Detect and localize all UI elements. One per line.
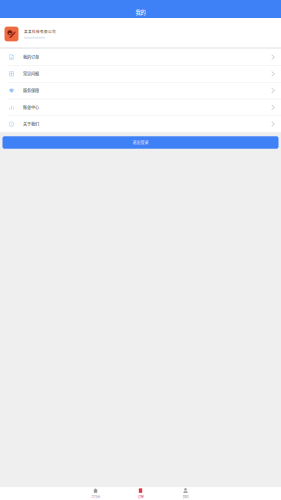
staticText: 服务保障 [23,88,39,94]
staticText: 我的 [182,494,188,499]
button[interactable]: 账单中心 [0,99,281,116]
button[interactable]: 工作台 [73,487,118,500]
button[interactable]: 退出登录 [0,136,281,149]
button[interactable]: 我的订单 [0,49,281,66]
staticText: 我的 [135,8,145,16]
staticText: 订单 [137,494,143,499]
staticText: 13800000000 [24,36,45,39]
button[interactable]: 关于我们 [0,116,281,132]
button[interactable]: 常见问题 [0,66,281,83]
button[interactable]: 订单 [118,487,163,500]
staticText: 工作台 [91,494,100,499]
button[interactable]: 服务保障 [0,82,281,99]
staticText: 常见问题 [23,71,39,77]
staticText: 退出登录 [132,139,148,145]
staticText: 账单中心 [23,104,39,110]
staticText: 某某科技有限公司 [24,29,56,34]
button[interactable]: 我的 [163,487,208,500]
staticText: 关于我们 [23,121,39,127]
staticText: 我的订单 [23,54,39,60]
